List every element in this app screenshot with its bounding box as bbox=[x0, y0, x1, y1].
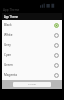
button[interactable]: Green bbox=[2, 60, 62, 70]
staticText: Cyan bbox=[4, 53, 12, 57]
button[interactable]: Cyan bbox=[2, 50, 62, 60]
staticText: Grey bbox=[4, 43, 11, 47]
staticText: App Theme bbox=[4, 15, 19, 19]
other: Status icons bbox=[40, 3, 55, 8]
button[interactable]: CANCEL bbox=[13, 82, 51, 87]
button[interactable]: Black bbox=[2, 20, 62, 30]
staticText: White bbox=[4, 33, 13, 37]
staticText: Magenta bbox=[4, 73, 17, 77]
button[interactable]: Grey bbox=[2, 40, 62, 50]
staticText: App Theme bbox=[3, 8, 20, 12]
staticText: CANCEL bbox=[28, 83, 37, 86]
staticText: Black bbox=[4, 23, 12, 27]
staticText: Green bbox=[4, 63, 13, 67]
button[interactable]: Magenta bbox=[2, 70, 62, 80]
button[interactable]: White bbox=[2, 30, 62, 40]
